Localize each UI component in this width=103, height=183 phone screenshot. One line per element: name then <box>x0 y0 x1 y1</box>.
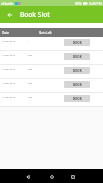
staticText: Slots Left <box>39 31 52 35</box>
staticText: BOOK <box>73 41 82 45</box>
staticText: 5:06 PM <box>89 1 102 6</box>
button[interactable]: BOOK <box>64 39 90 46</box>
staticText: BOOK <box>73 97 82 101</box>
button[interactable]: BOOK <box>64 53 90 60</box>
staticText: 1 <box>28 39 30 42</box>
staticText: 300 <box>28 53 33 56</box>
staticText: 300 <box>28 95 33 98</box>
staticText: 21/05/2018 <box>2 95 15 98</box>
staticText: BOOK <box>73 55 82 59</box>
staticText: Date <box>2 31 10 35</box>
button[interactable]: BOOK <box>64 95 90 102</box>
staticText: eHealth <box>1 1 14 6</box>
staticText: 19/05/2018 <box>2 81 15 84</box>
staticText: Book Slot <box>20 10 50 19</box>
staticText: BOOK <box>73 69 82 73</box>
staticText: 300 <box>28 81 33 84</box>
staticText: 300 <box>28 67 33 70</box>
button[interactable]: BOOK <box>64 67 90 74</box>
button[interactable]: Recents <box>68 172 78 182</box>
staticText: 17/05/2018 <box>2 53 15 56</box>
button[interactable]: BOOK <box>64 81 90 88</box>
button[interactable]: Home <box>47 172 57 182</box>
staticText: 18/05/2018 <box>2 67 15 70</box>
staticText: BOOK <box>73 83 82 87</box>
staticText: 15/05/2018 <box>2 39 15 42</box>
button[interactable]: Back <box>5 10 15 20</box>
button[interactable]: Back <box>23 172 33 182</box>
staticText: 88% <box>75 1 82 6</box>
